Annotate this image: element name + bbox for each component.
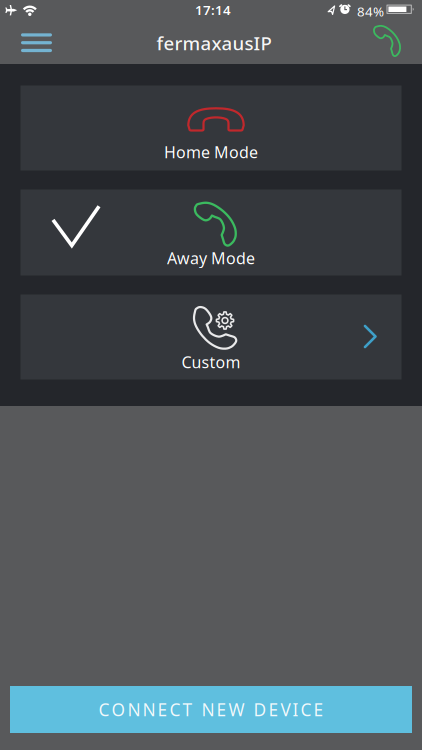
staticText: Away Mode [167, 247, 255, 269]
button[interactable]: Home Mode [20, 85, 401, 170]
button[interactable]: Custom [20, 294, 401, 379]
staticText: 17:14 [195, 1, 231, 19]
button[interactable]: Away Mode [20, 189, 401, 275]
button[interactable]: C O N N E C T N E W D E V I C E [10, 686, 412, 733]
staticText: 84% [357, 2, 384, 20]
staticText: C O N N E C T N E W D E V I C E [98, 698, 323, 721]
staticText: Custom [181, 351, 240, 373]
button[interactable]: Menu [0, 22, 52, 52]
staticText: Home Mode [164, 141, 258, 163]
staticText: fermaxausIP [156, 30, 271, 55]
button[interactable]: Call [372, 22, 402, 58]
